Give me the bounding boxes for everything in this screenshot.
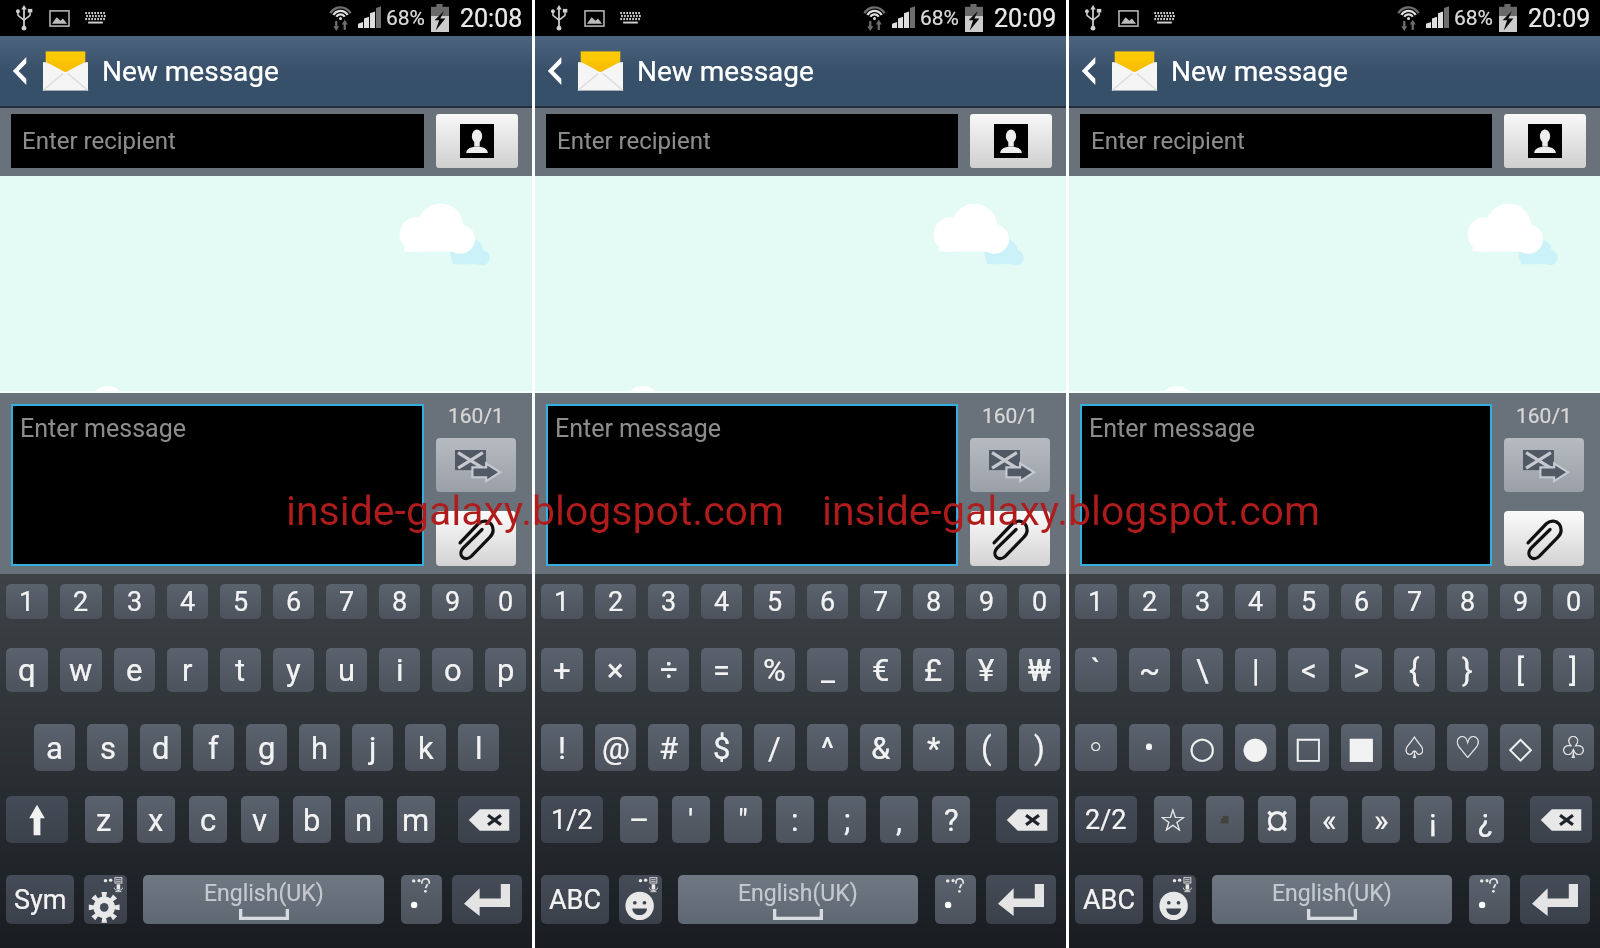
- button[interactable]: Enter message: [546, 404, 958, 566]
- button[interactable]: ♡: [1447, 724, 1488, 771]
- button[interactable]: f: [193, 724, 234, 771]
- button[interactable]: ?: [932, 796, 970, 843]
- button[interactable]: Back: [535, 36, 574, 106]
- button[interactable]: ○: [1182, 724, 1223, 771]
- button[interactable]: Attach: [436, 511, 516, 566]
- button[interactable]: +: [541, 648, 583, 692]
- button[interactable]: ▪: [1206, 796, 1244, 843]
- button[interactable]: •: [1129, 724, 1170, 771]
- button[interactable]: ◇: [1500, 724, 1541, 771]
- button[interactable]: ♧: [1553, 724, 1594, 771]
- button[interactable]: @: [595, 724, 636, 771]
- button[interactable]: 2: [595, 584, 636, 619]
- button[interactable]: 2/2: [1075, 796, 1137, 843]
- button[interactable]: Back: [1069, 36, 1108, 106]
- button[interactable]: *: [913, 724, 954, 771]
- button[interactable]: a: [34, 724, 75, 771]
- button[interactable]: 1/2: [541, 796, 603, 843]
- button[interactable]: Shift: [6, 796, 68, 843]
- button[interactable]: Letters: [541, 875, 609, 924]
- button[interactable]: \: [1182, 648, 1223, 692]
- button[interactable]: ]: [1553, 648, 1594, 692]
- button[interactable]: 9: [432, 584, 473, 619]
- button[interactable]: 9: [966, 584, 1007, 619]
- button[interactable]: 2: [60, 584, 102, 619]
- button[interactable]: q: [6, 648, 48, 692]
- button[interactable]: ●: [1235, 724, 1276, 771]
- button[interactable]: Settings: [84, 875, 127, 924]
- button[interactable]: w: [60, 648, 102, 692]
- button[interactable]: h: [299, 724, 340, 771]
- button[interactable]: m: [397, 796, 435, 843]
- button[interactable]: ☆: [1154, 796, 1192, 843]
- button[interactable]: 0: [485, 584, 526, 619]
- button[interactable]: Symbols: [6, 875, 74, 924]
- button[interactable]: Backspace: [996, 796, 1058, 843]
- button[interactable]: Contacts: [970, 114, 1052, 168]
- button[interactable]: Enter recipient: [546, 114, 958, 168]
- button[interactable]: 3: [1182, 584, 1223, 619]
- button[interactable]: 3: [648, 584, 689, 619]
- button[interactable]: Period: [935, 875, 976, 924]
- button[interactable]: Enter: [1520, 875, 1590, 924]
- button[interactable]: k: [405, 724, 446, 771]
- button[interactable]: |: [1235, 648, 1276, 692]
- button[interactable]: ₩: [1019, 648, 1060, 692]
- button[interactable]: &: [860, 724, 901, 771]
- button[interactable]: 1: [541, 584, 583, 619]
- button[interactable]: /: [754, 724, 795, 771]
- button[interactable]: ¿: [1466, 796, 1504, 843]
- button[interactable]: English(UK): [678, 875, 918, 924]
- button[interactable]: p: [485, 648, 526, 692]
- button[interactable]: i: [379, 648, 420, 692]
- button[interactable]: {: [1394, 648, 1435, 692]
- button[interactable]: >: [1341, 648, 1382, 692]
- button[interactable]: `: [1075, 648, 1117, 692]
- button[interactable]: «: [1310, 796, 1348, 843]
- button[interactable]: (: [966, 724, 1007, 771]
- button[interactable]: Contacts: [436, 114, 518, 168]
- button[interactable]: <: [1288, 648, 1329, 692]
- button[interactable]: ■: [1341, 724, 1382, 771]
- button[interactable]: Enter: [986, 875, 1056, 924]
- button[interactable]: v: [241, 796, 279, 843]
- button[interactable]: x: [137, 796, 175, 843]
- button[interactable]: ◦: [1075, 724, 1117, 771]
- button[interactable]: b: [293, 796, 331, 843]
- button[interactable]: c: [189, 796, 227, 843]
- button[interactable]: ~: [1129, 648, 1170, 692]
- button[interactable]: €: [860, 648, 901, 692]
- button[interactable]: 6: [1341, 584, 1382, 619]
- button[interactable]: ): [1019, 724, 1060, 771]
- button[interactable]: 2: [1129, 584, 1170, 619]
- button[interactable]: Backspace: [1530, 796, 1592, 843]
- button[interactable]: 5: [220, 584, 261, 619]
- button[interactable]: ": [724, 796, 762, 843]
- button[interactable]: ¥: [966, 648, 1007, 692]
- button[interactable]: 0: [1019, 584, 1060, 619]
- button[interactable]: l: [458, 724, 499, 771]
- button[interactable]: 7: [860, 584, 901, 619]
- button[interactable]: g: [246, 724, 287, 771]
- button[interactable]: Backspace: [458, 796, 520, 843]
- button[interactable]: d: [140, 724, 181, 771]
- button[interactable]: ♤: [1394, 724, 1435, 771]
- button[interactable]: !: [541, 724, 583, 771]
- button[interactable]: j: [352, 724, 393, 771]
- button[interactable]: Period: [1469, 875, 1510, 924]
- button[interactable]: ;: [828, 796, 866, 843]
- button[interactable]: Enter message: [11, 404, 424, 566]
- button[interactable]: 6: [273, 584, 314, 619]
- button[interactable]: Settings: [619, 875, 662, 924]
- button[interactable]: _: [807, 648, 848, 692]
- button[interactable]: ¤: [1258, 796, 1296, 843]
- button[interactable]: Settings: [1153, 875, 1196, 924]
- button[interactable]: Letters: [1075, 875, 1143, 924]
- button[interactable]: n: [345, 796, 383, 843]
- button[interactable]: 6: [807, 584, 848, 619]
- button[interactable]: 7: [326, 584, 367, 619]
- button[interactable]: Enter message: [1080, 404, 1492, 566]
- button[interactable]: ^: [807, 724, 848, 771]
- button[interactable]: t: [220, 648, 261, 692]
- button[interactable]: Attach: [970, 511, 1050, 566]
